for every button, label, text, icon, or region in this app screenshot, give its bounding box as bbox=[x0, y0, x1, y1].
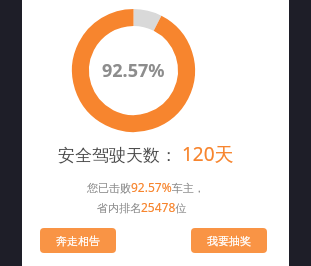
button[interactable]: 我要抽奖 bbox=[191, 228, 267, 253]
staticText: 92.57% bbox=[102, 58, 165, 83]
staticText: 您已击败92.57%车主， bbox=[87, 179, 205, 195]
staticText: 奔走相告 bbox=[56, 234, 100, 248]
staticText: 省内排名25478位 bbox=[97, 199, 187, 215]
button[interactable]: 奔走相告 bbox=[40, 228, 116, 253]
staticText: 安全驾驶天数： 120天 bbox=[58, 141, 234, 167]
staticText: 我要抽奖 bbox=[207, 234, 251, 248]
